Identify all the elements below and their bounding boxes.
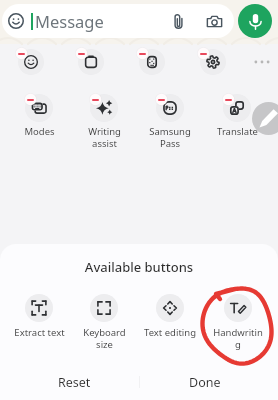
button[interactable]: Clipboard [78,49,104,75]
button[interactable]: Emoji [2,4,234,38]
button[interactable]: Text editing [143,294,197,339]
staticText: Handwriting [211,326,265,350]
button[interactable]: Keyboard size [77,294,131,350]
staticText: Writing assist [88,125,121,149]
button[interactable]: Sticker [139,49,165,75]
staticText: Text editing [144,326,196,339]
button[interactable]: Samsung Pass [136,94,204,149]
button[interactable]: Done [140,364,278,400]
button[interactable]: Modes [5,94,73,138]
staticText: Available buttons [0,258,278,276]
button[interactable]: More options [249,49,275,75]
staticText: Message [35,10,104,32]
button[interactable]: Emoji [18,49,44,75]
button[interactable]: Settings [200,49,226,75]
button[interactable]: Voice message [238,4,272,38]
button[interactable]: Reset [0,364,139,400]
button[interactable]: Attach [170,13,187,30]
staticText: Translate [217,125,258,138]
staticText: Modes [24,125,55,138]
button[interactable]: Handwriting [211,294,265,350]
button[interactable]: Translate [203,94,271,138]
button[interactable]: Writing assist [70,94,138,149]
button[interactable]: Emoji [8,13,24,29]
staticText: Extract text [14,326,65,339]
staticText: Done [189,374,221,391]
staticText: Samsung Pass [149,125,191,149]
button[interactable]: Edit [252,102,278,135]
button[interactable]: Camera [206,13,223,30]
button[interactable]: Extract text [12,294,66,339]
staticText: Reset [58,374,91,391]
staticText: Keyboard size [83,326,126,350]
